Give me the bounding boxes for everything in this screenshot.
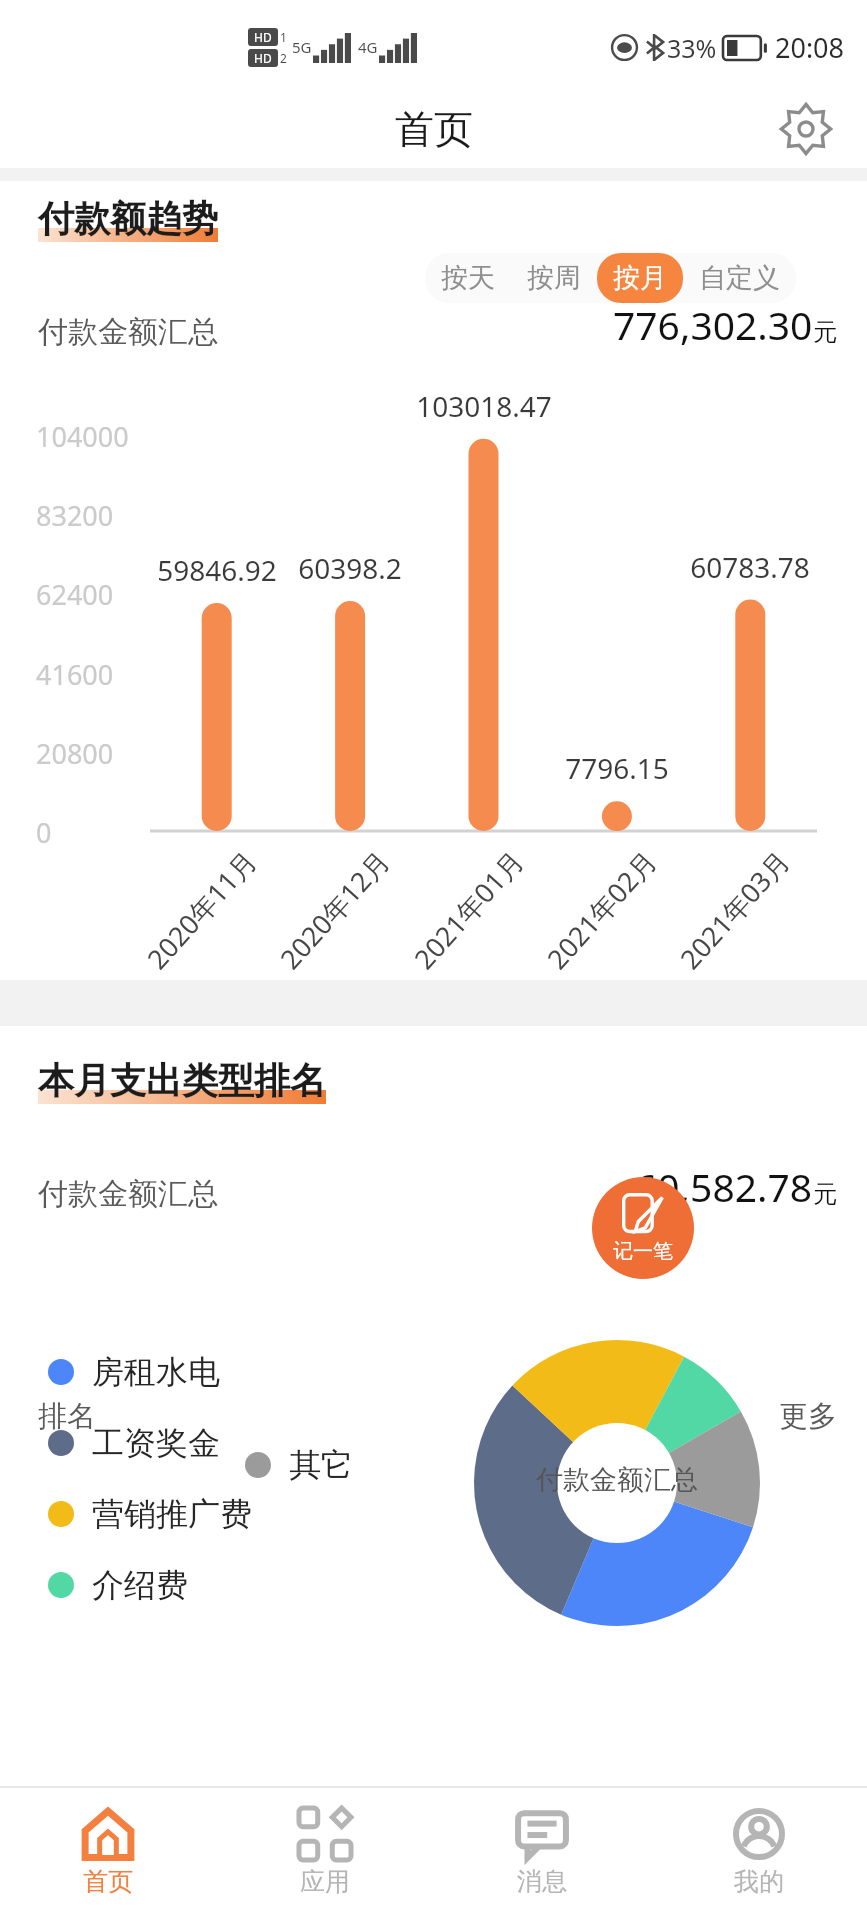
staticText: 付款金额汇总	[38, 1175, 218, 1213]
staticText: 元	[813, 1179, 837, 1209]
staticText: 按月	[613, 261, 667, 295]
staticText: 4G	[358, 37, 378, 57]
staticText: 0	[36, 814, 52, 851]
staticText: 104000	[36, 418, 129, 455]
staticText: 7796.15	[565, 749, 669, 787]
staticText: 60783.78	[690, 548, 810, 586]
button[interactable]: 更多	[779, 1398, 837, 1435]
button[interactable]: 我的	[650, 1788, 867, 1916]
staticText: 2021年03月	[672, 842, 797, 976]
staticText: 59846.92	[157, 551, 277, 589]
staticText: 按周	[527, 261, 581, 295]
staticText: 本月支出类型排名	[38, 1058, 326, 1103]
button[interactable]: 首页	[0, 1788, 216, 1916]
staticText: 营销推广费	[92, 1494, 252, 1534]
button[interactable]: 排名	[38, 1398, 96, 1435]
button[interactable]: 消息	[433, 1788, 650, 1916]
staticText: 2020年12月	[272, 842, 397, 976]
staticText: 20800	[36, 735, 114, 772]
button[interactable]: 工资奖金	[48, 1423, 220, 1463]
staticText: 83200	[36, 497, 114, 534]
staticText: 2021年01月	[406, 842, 531, 976]
staticText: 2	[280, 50, 287, 66]
staticText: 工资奖金	[92, 1423, 220, 1463]
staticText: 消息	[517, 1866, 567, 1897]
staticText: 1	[280, 29, 287, 45]
staticText: 记一笔	[613, 1239, 673, 1264]
staticText: 房租水电	[92, 1352, 220, 1392]
staticText: 自定义	[699, 261, 780, 295]
staticText: 首页	[83, 1866, 133, 1897]
button[interactable]: 按月	[597, 253, 683, 303]
staticText: 60,582.78	[635, 1160, 813, 1213]
staticText: 首页	[395, 105, 473, 154]
button[interactable]: 记一笔	[592, 1177, 694, 1279]
staticText: 5G	[292, 37, 312, 57]
button[interactable]: 介绍费	[48, 1565, 188, 1605]
button[interactable]: 营销推广费	[48, 1494, 252, 1534]
staticText: 2021年02月	[539, 842, 664, 976]
staticText: 60398.2	[298, 549, 402, 587]
button[interactable]: 自定义	[683, 253, 796, 303]
staticText: 付款金额汇总	[536, 1463, 698, 1497]
staticText: 其它	[289, 1445, 353, 1485]
staticText: 我的	[734, 1866, 784, 1897]
staticText: 41600	[36, 656, 114, 693]
staticText: 付款金额汇总	[38, 313, 218, 351]
staticText: HD	[254, 50, 272, 66]
button[interactable]: 按周	[511, 253, 597, 303]
staticText: 按天	[441, 261, 495, 295]
staticText: 776,302.30	[613, 298, 813, 351]
staticText: 付款额趋势	[38, 196, 218, 241]
staticText: HD	[254, 29, 272, 45]
staticText: 介绍费	[92, 1565, 188, 1605]
staticText: 元	[813, 317, 837, 347]
staticText: 20:08	[775, 29, 845, 66]
button[interactable]: 应用	[216, 1788, 433, 1916]
staticText: 103018.47	[416, 387, 552, 425]
staticText: 应用	[300, 1866, 350, 1897]
button[interactable]: 其它	[245, 1445, 353, 1485]
staticText: 33%	[667, 31, 717, 65]
button[interactable]: Settings	[772, 95, 840, 163]
staticText: 62400	[36, 576, 114, 613]
button[interactable]: 按天	[425, 253, 511, 303]
staticText: 2020年11月	[139, 842, 264, 976]
button[interactable]: 房租水电	[48, 1352, 220, 1392]
